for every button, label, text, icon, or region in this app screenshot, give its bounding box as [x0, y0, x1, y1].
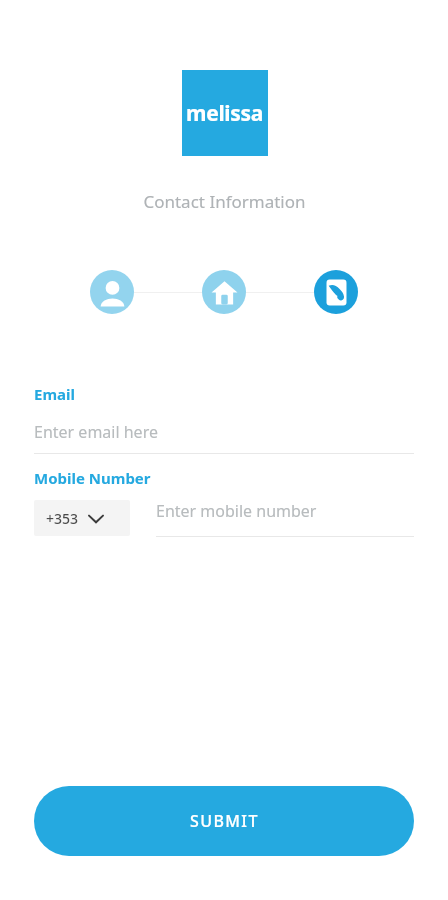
staticText: Enter email here [34, 421, 158, 443]
staticText: Contact Information [143, 190, 306, 213]
button[interactable]: Contact step [314, 270, 358, 314]
staticText: +353 [46, 509, 79, 528]
staticText: SUBMIT [190, 810, 259, 832]
staticText: Email [34, 384, 75, 404]
button[interactable]: +353 [34, 500, 130, 536]
staticText: Enter mobile number [156, 500, 317, 522]
button[interactable]: Personal details step [90, 270, 134, 314]
staticText: melissa [186, 99, 264, 128]
button[interactable]: SUBMIT [34, 786, 414, 856]
button[interactable]: Enter mobile number [156, 500, 414, 527]
button[interactable]: Address step [202, 270, 246, 314]
button[interactable]: Enter email here [34, 421, 414, 443]
staticText: Mobile Number [34, 468, 151, 488]
